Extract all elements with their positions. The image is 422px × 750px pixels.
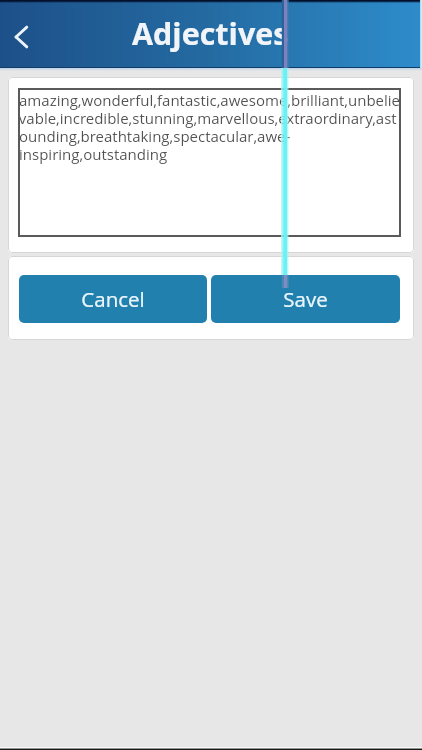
staticText: amazing,wonderful,fantastic,awesome,bril… [19,90,401,165]
button[interactable]: Save [211,275,400,323]
staticText: Adjectives [132,12,289,54]
button[interactable]: Back [0,6,44,62]
button[interactable]: Cancel [19,275,207,323]
staticText: Cancel [81,285,145,313]
staticText: Save [283,285,328,313]
